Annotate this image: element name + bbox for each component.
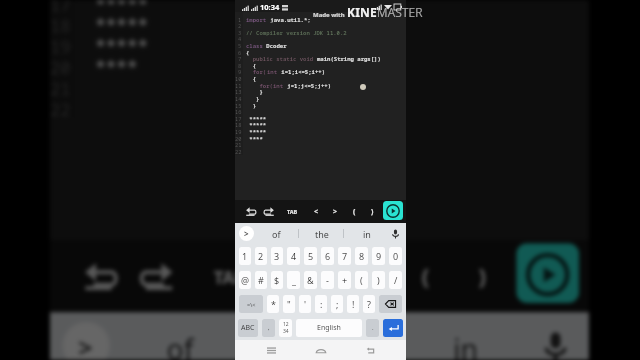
staticText: Dcoder (263, 42, 287, 49)
button[interactable]: 0 (389, 247, 402, 265)
button[interactable]: of (254, 223, 299, 244)
button[interactable]: 2 (255, 247, 267, 265)
button[interactable]: Voice input (535, 328, 573, 360)
staticText: 12 (283, 321, 289, 328)
button[interactable]: the (252, 312, 393, 360)
button[interactable]: & (304, 271, 317, 289)
button[interactable]: More suggestions (63, 322, 110, 360)
button[interactable]: Run (383, 201, 403, 220)
staticText: class (246, 42, 263, 49)
button[interactable]: ; (331, 295, 343, 313)
button[interactable]: Redo (129, 240, 179, 312)
button[interactable]: * (267, 295, 279, 313)
button[interactable]: 5 (304, 247, 317, 265)
button[interactable]: < (309, 200, 323, 223)
button[interactable]: # (255, 271, 267, 289)
button[interactable]: Undo (75, 240, 126, 312)
button[interactable]: > (328, 200, 342, 223)
button[interactable]: Run (516, 243, 579, 303)
button[interactable]: Redo (260, 200, 276, 223)
button[interactable]: Home (308, 341, 334, 359)
button[interactable]: 1 (239, 247, 251, 265)
staticText: // Compiler version JDK 11.0.2 (246, 29, 347, 36)
staticText: & (307, 274, 314, 286)
staticText: " (287, 298, 291, 310)
button[interactable]: ( (355, 271, 368, 289)
button[interactable]: 6 (321, 247, 334, 265)
button[interactable]: English (296, 319, 362, 337)
button[interactable]: ) (365, 200, 379, 223)
staticText: > (333, 207, 338, 217)
button[interactable]: Enter (383, 319, 403, 337)
staticText: ' (304, 298, 307, 310)
staticText: 19 (235, 128, 242, 135)
button[interactable]: in (344, 223, 389, 244)
staticText: in (363, 228, 371, 240)
button[interactable]: TAB (207, 240, 252, 312)
button[interactable]: . (366, 319, 379, 337)
button[interactable]: TAB (285, 200, 299, 223)
staticText: ***** (246, 115, 267, 122)
staticText: . (372, 324, 374, 332)
staticText: 5 (308, 250, 314, 262)
staticText: + (342, 274, 348, 286)
button[interactable]: ? (363, 295, 375, 313)
button[interactable]: 8 (355, 247, 368, 265)
button[interactable]: < (283, 240, 327, 312)
button[interactable]: Recents (258, 341, 284, 359)
button[interactable]: : (315, 295, 327, 313)
button[interactable]: , (262, 319, 275, 337)
staticText: of (272, 228, 281, 240)
button[interactable]: Backspace (379, 295, 402, 313)
button[interactable]: ABC (238, 319, 258, 337)
staticText: 10 (235, 75, 242, 82)
button[interactable]: =\< (239, 295, 263, 313)
button[interactable]: - (321, 271, 334, 289)
button[interactable]: in (393, 312, 535, 360)
button[interactable]: 9 (372, 247, 385, 265)
button[interactable]: ) (459, 240, 504, 312)
button[interactable]: 7 (338, 247, 351, 265)
staticText: =\< (247, 301, 256, 308)
staticText: **** (246, 135, 263, 142)
button[interactable]: Back (357, 341, 383, 359)
button[interactable]: " (283, 295, 295, 313)
button[interactable]: Voice input (389, 228, 401, 240)
staticText: ? (367, 298, 371, 310)
button[interactable]: / (389, 271, 402, 289)
button[interactable]: @ (239, 271, 251, 289)
button[interactable]: ( (347, 200, 361, 223)
staticText: java.util.*; (267, 15, 311, 22)
button[interactable]: More suggestions (239, 226, 254, 241)
button[interactable]: 3 (271, 247, 283, 265)
staticText: English (317, 323, 341, 333)
button[interactable]: $ (271, 271, 283, 289)
button[interactable]: Undo (243, 200, 259, 223)
staticText: ( (353, 207, 356, 217)
staticText: the (315, 228, 329, 240)
staticText: 3 (274, 250, 280, 262)
button[interactable]: Numbers (279, 319, 292, 337)
button[interactable]: ) (372, 271, 385, 289)
button[interactable]: > (343, 240, 387, 312)
button[interactable]: + (338, 271, 351, 289)
button[interactable]: of (110, 312, 252, 360)
button[interactable]: _ (287, 271, 300, 289)
button[interactable]: ( (403, 240, 447, 312)
staticText: 2 (258, 250, 264, 262)
staticText: 18 (235, 121, 242, 128)
button[interactable]: ! (347, 295, 359, 313)
staticText: for( (246, 82, 273, 89)
button[interactable]: the (299, 223, 344, 244)
button[interactable]: ' (299, 295, 311, 313)
button[interactable]: 4 (287, 247, 300, 265)
staticText: ) (371, 207, 374, 217)
staticText: { (246, 49, 250, 56)
staticText: 2 (238, 22, 242, 29)
staticText: ) (478, 262, 488, 294)
staticText: 20 (235, 135, 242, 142)
